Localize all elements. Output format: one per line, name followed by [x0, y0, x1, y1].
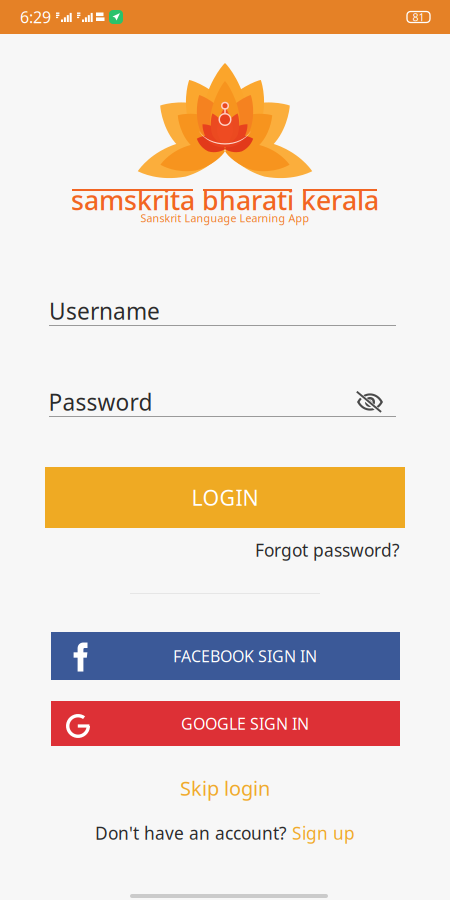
staticText: Username: [49, 296, 160, 326]
button[interactable]: Forgot password?: [45, 538, 400, 562]
staticText: Sign up: [292, 821, 355, 844]
button[interactable]: Username: [49, 297, 396, 326]
button[interactable]: Password: [48, 388, 348, 416]
button[interactable]: Show password: [356, 390, 396, 414]
button[interactable]: LOGIN: [45, 467, 405, 528]
staticText: FACEBOOK SIGN IN: [173, 645, 317, 667]
button[interactable]: Skip login: [0, 775, 450, 801]
staticText: GOOGLE SIGN IN: [181, 713, 309, 734]
button[interactable]: Sign up: [292, 821, 355, 844]
button[interactable]: GOOGLE SIGN IN: [51, 701, 400, 746]
staticText: Password: [48, 387, 152, 417]
staticText: LOGIN: [191, 483, 258, 512]
staticText: Forgot password?: [255, 538, 400, 561]
staticText: 6:29: [20, 6, 51, 28]
staticText: Skip login: [180, 775, 270, 801]
staticText: Sanskrit Language Learning App: [140, 211, 309, 225]
button[interactable]: FACEBOOK SIGN IN: [51, 632, 400, 680]
staticText: 81: [412, 10, 424, 24]
staticText: samskrita bharati kerala: [71, 182, 379, 218]
staticText: Don't have an account?: [95, 821, 287, 844]
